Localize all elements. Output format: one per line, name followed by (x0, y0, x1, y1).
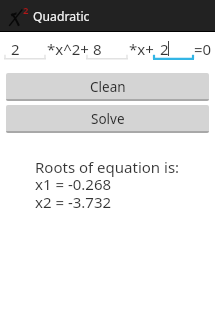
button[interactable]: 2 (4, 36, 46, 60)
staticText: 8 (93, 39, 102, 59)
button[interactable]: 8 (86, 36, 128, 60)
button[interactable]: Solve (6, 105, 209, 133)
button[interactable]: 2 (153, 36, 194, 60)
staticText: 2 (11, 39, 20, 59)
staticText: Quadratic (33, 8, 90, 25)
button[interactable]: Clean (6, 73, 209, 101)
staticText: x1 = -0.268 (35, 174, 112, 194)
staticText: Clean (90, 78, 126, 96)
staticText: x2 = -3.732 (35, 192, 112, 212)
other: App icon (5, 4, 29, 28)
staticText: 2 (23, 4, 29, 17)
staticText: 2 (160, 39, 169, 59)
staticText: *x+ (129, 39, 154, 59)
staticText: *x^2+ (47, 39, 89, 59)
staticText: Solve (91, 110, 125, 128)
staticText: =0 (194, 39, 212, 59)
staticText: Roots of equation is: (35, 157, 180, 177)
